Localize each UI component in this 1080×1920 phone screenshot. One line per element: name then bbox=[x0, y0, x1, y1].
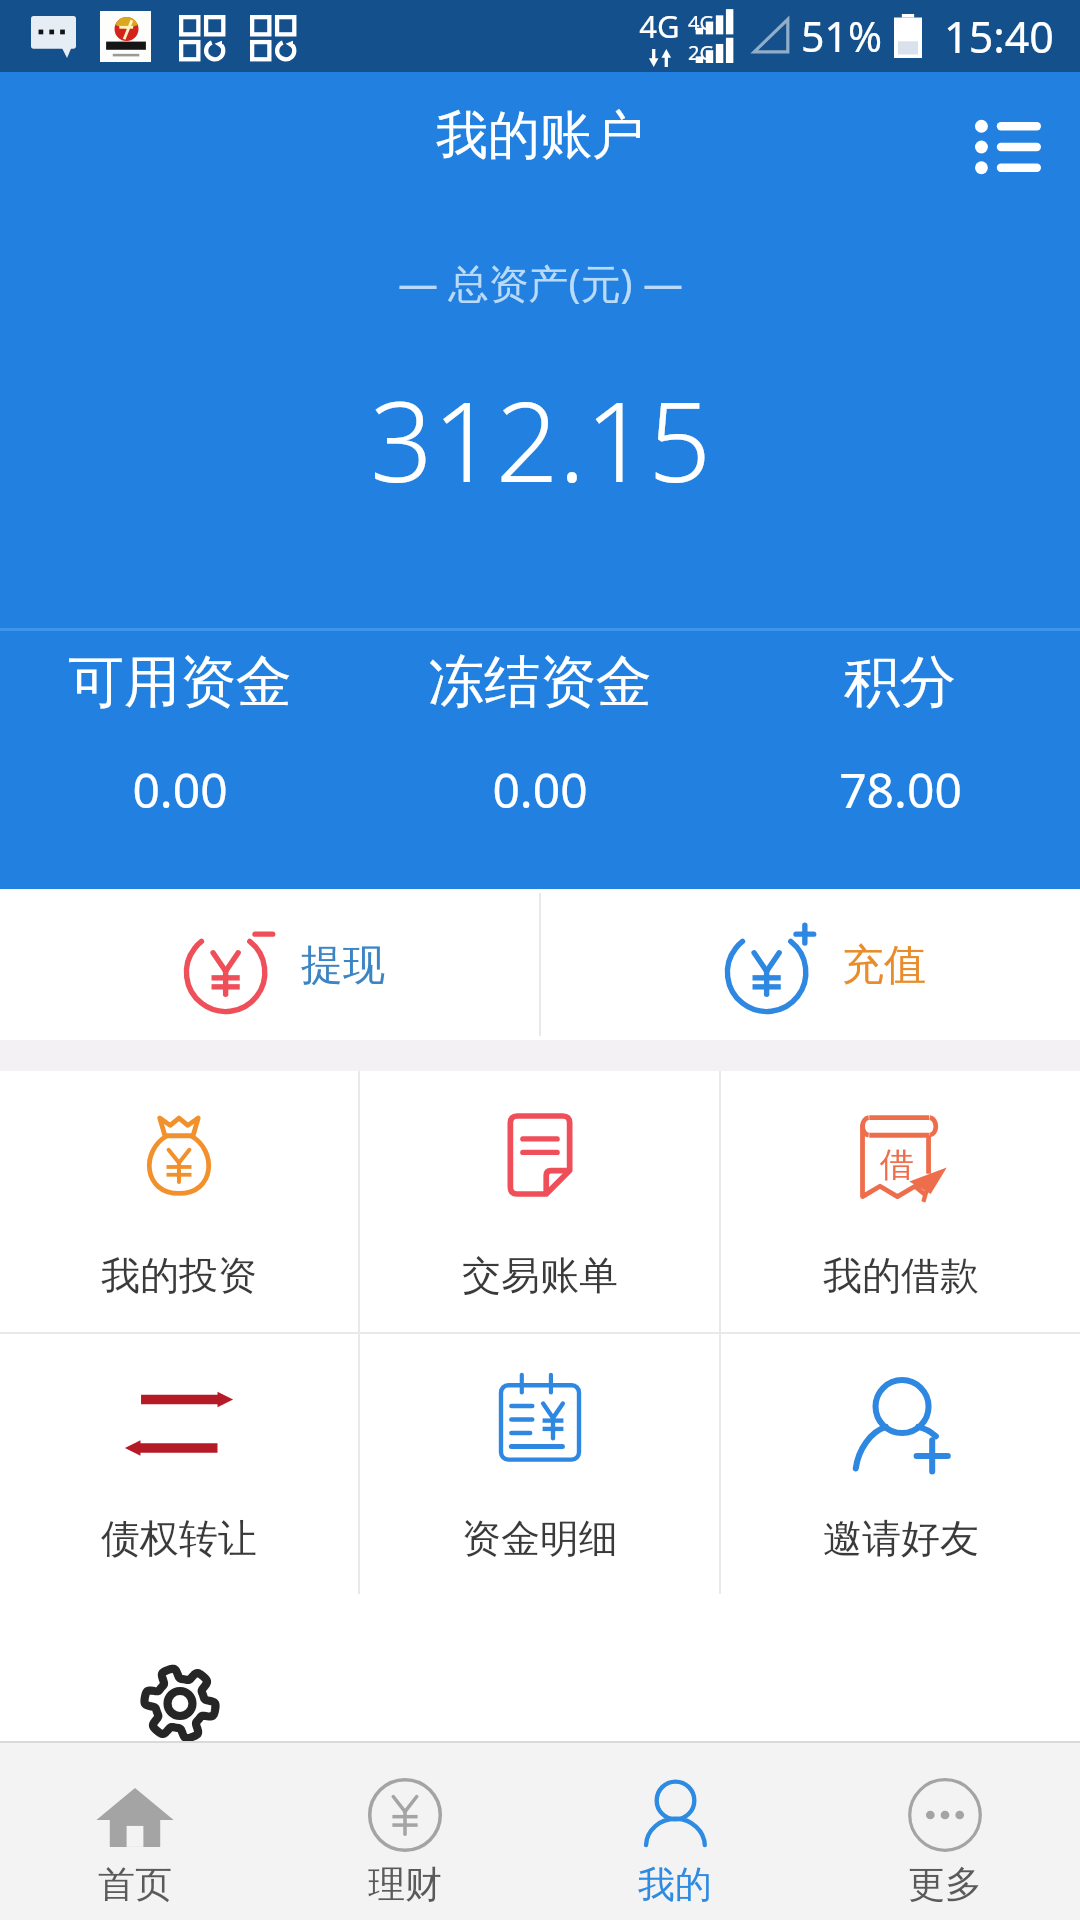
staticText: 更多 bbox=[908, 1861, 982, 1908]
button[interactable]: 资金明细 bbox=[360, 1334, 719, 1594]
button[interactable]: 提现 bbox=[0, 889, 539, 1040]
staticText: 冻结资金 bbox=[428, 647, 652, 718]
staticText: 我的投资 bbox=[101, 1251, 257, 1300]
staticText: 首页 bbox=[98, 1861, 172, 1908]
staticText: 交易账单 bbox=[462, 1251, 618, 1300]
staticText: 可用资金 bbox=[68, 647, 292, 718]
button[interactable]: Settings bbox=[0, 1594, 360, 1741]
button[interactable]: 我的 bbox=[540, 1743, 810, 1920]
staticText: 0.00 bbox=[492, 757, 588, 822]
staticText: 2G bbox=[688, 39, 714, 63]
button[interactable]: 充值 bbox=[541, 889, 1080, 1040]
staticText: 312.15 bbox=[370, 364, 711, 498]
button[interactable]: Menu bbox=[960, 99, 1056, 195]
staticText: 我的 bbox=[638, 1861, 712, 1908]
button[interactable]: 理财 bbox=[270, 1743, 540, 1920]
staticText: 充值 bbox=[842, 939, 926, 992]
staticText: 债权转让 bbox=[101, 1514, 257, 1563]
staticText: 邀请好友 bbox=[823, 1514, 979, 1563]
button[interactable]: 我的投资 bbox=[0, 1071, 358, 1332]
staticText: 4G bbox=[688, 9, 714, 36]
staticText: 0.00 bbox=[132, 757, 228, 822]
staticText: 资金明细 bbox=[462, 1514, 618, 1563]
staticText: 提现 bbox=[301, 939, 385, 992]
button[interactable]: 更多 bbox=[810, 1743, 1080, 1920]
staticText: 4G bbox=[639, 5, 680, 47]
button[interactable]: 首页 bbox=[0, 1743, 270, 1920]
staticText: 15:40 bbox=[944, 7, 1054, 66]
button[interactable]: 借 bbox=[721, 1071, 1080, 1332]
staticText: 我的账户 bbox=[436, 103, 644, 169]
staticText: 理财 bbox=[368, 1861, 442, 1908]
staticText: — 总资产(元) — bbox=[398, 255, 683, 310]
staticText: 我的借款 bbox=[823, 1251, 979, 1300]
button[interactable]: 债权转让 bbox=[0, 1334, 358, 1594]
button[interactable]: 邀请好友 bbox=[721, 1334, 1080, 1594]
staticText: 借 bbox=[880, 1143, 914, 1186]
staticText: 积分 bbox=[844, 647, 956, 718]
staticText: 51% bbox=[801, 8, 882, 64]
button[interactable]: 交易账单 bbox=[360, 1071, 719, 1332]
staticText: 78.00 bbox=[839, 757, 962, 822]
